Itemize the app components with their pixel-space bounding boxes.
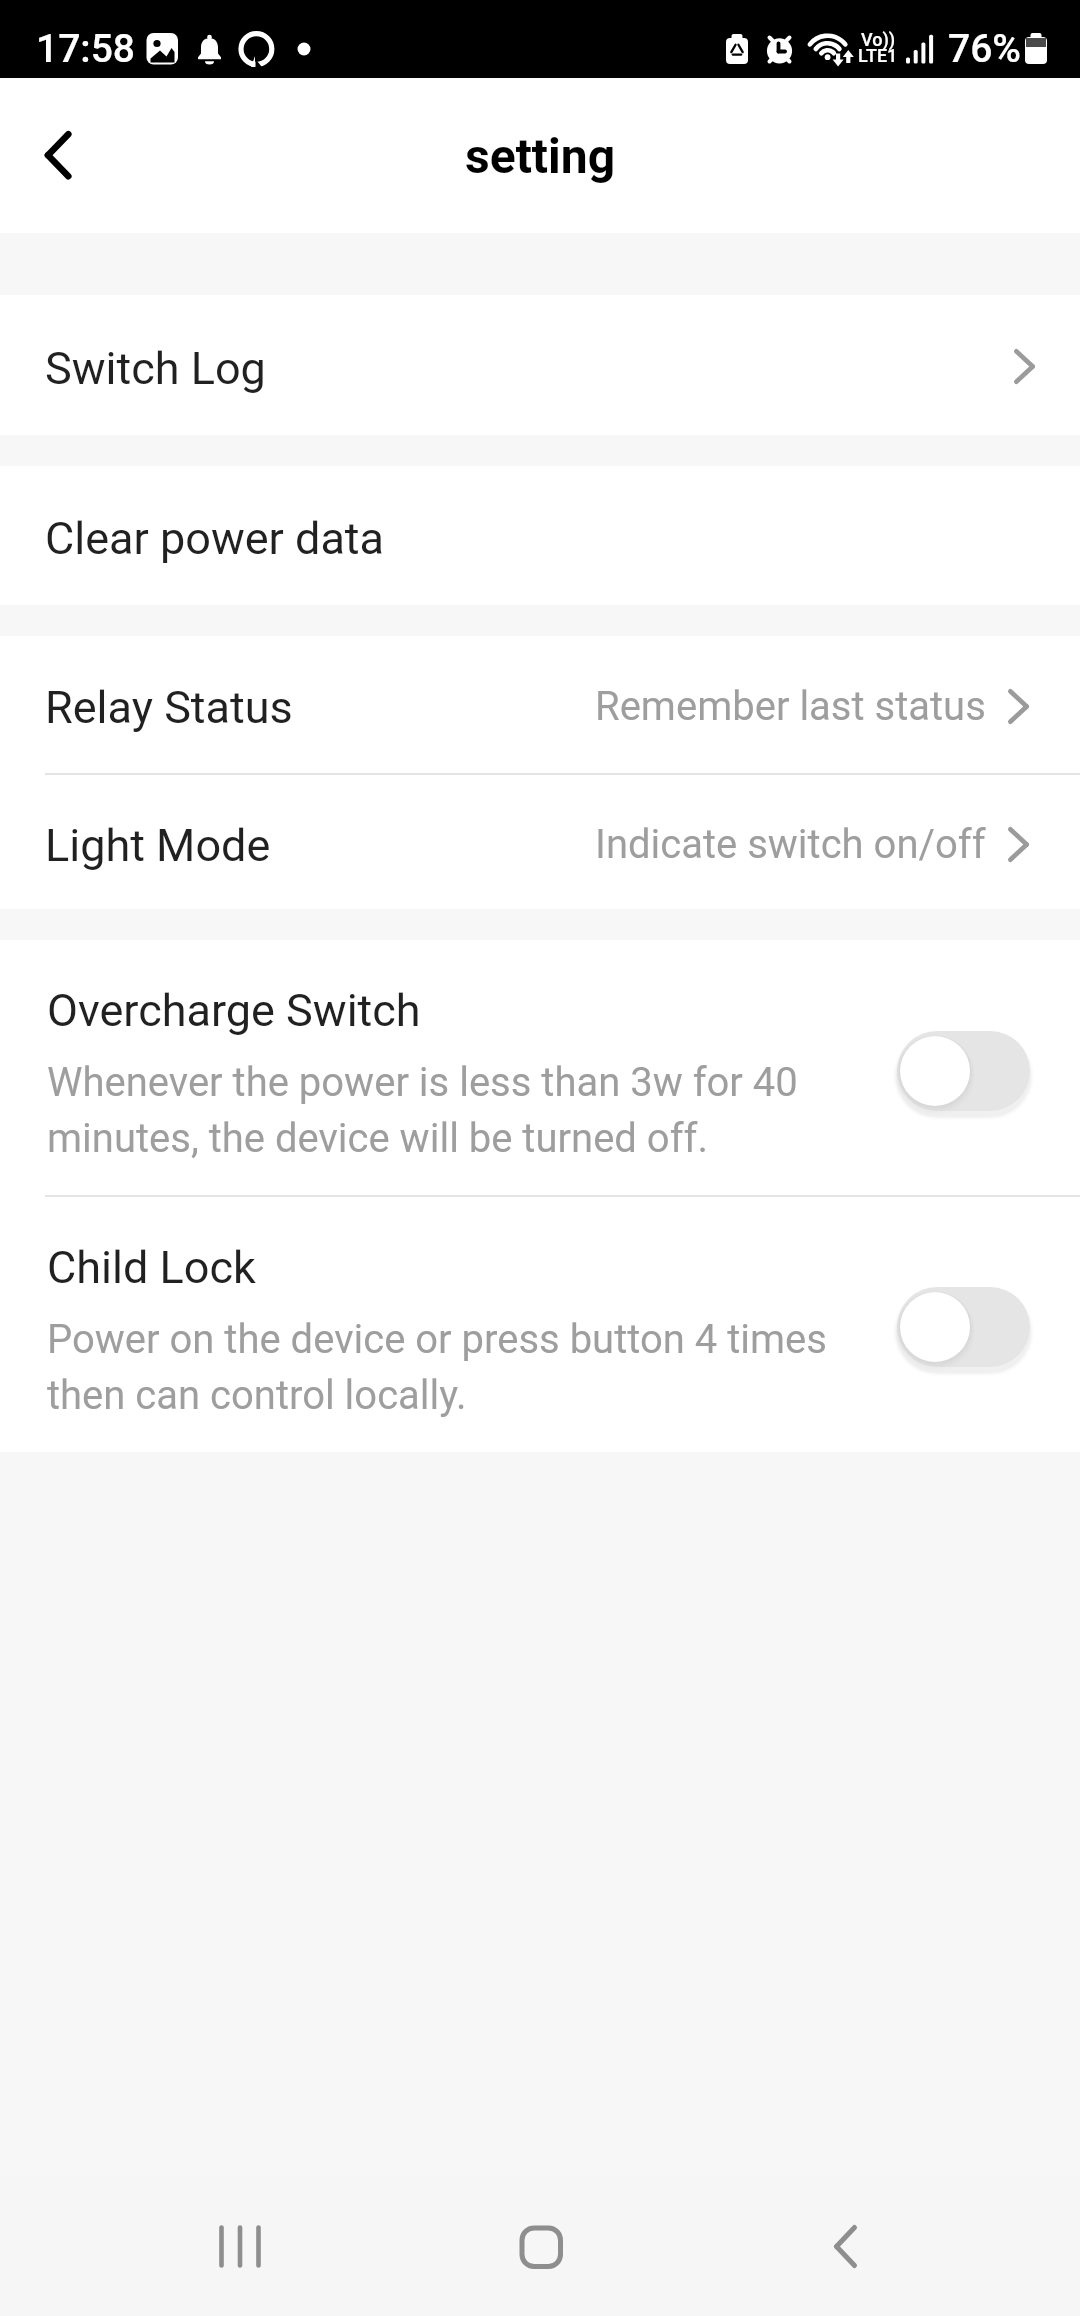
button[interactable]: Home bbox=[481, 2190, 601, 2310]
button[interactable]: Back bbox=[0, 101, 110, 211]
button[interactable]: Light Mode bbox=[0, 775, 1080, 909]
button[interactable]: Back bbox=[786, 2190, 906, 2310]
staticText: Indicate switch on/off bbox=[595, 821, 986, 868]
button[interactable]: Switch Log bbox=[0, 295, 1080, 435]
button[interactable]: Child Lock bbox=[0, 1197, 1080, 1452]
staticText: Power on the device or press button 4 ti… bbox=[47, 1316, 827, 1418]
staticText: Relay Status bbox=[45, 681, 293, 734]
staticText: Light Mode bbox=[45, 819, 271, 872]
staticText: Remember last status bbox=[595, 683, 986, 730]
button[interactable]: Toggle bbox=[897, 1031, 1042, 1127]
staticText: LTE1 bbox=[858, 45, 898, 66]
staticText: setting bbox=[465, 128, 616, 184]
staticText: Vo)) bbox=[861, 29, 896, 50]
staticText: Overcharge Switch bbox=[47, 984, 421, 1037]
button[interactable]: Overcharge Switch bbox=[0, 940, 1080, 1195]
button[interactable]: Clear power data bbox=[0, 466, 1080, 605]
staticText: 17:58 bbox=[36, 26, 136, 72]
button[interactable]: Relay Status bbox=[0, 636, 1080, 773]
button[interactable]: Toggle bbox=[897, 1287, 1042, 1383]
staticText: Clear power data bbox=[45, 512, 385, 565]
staticText: Whenever the power is less than 3w for 4… bbox=[47, 1059, 798, 1161]
staticText: 76% bbox=[948, 26, 1021, 72]
staticText: Child Lock bbox=[47, 1241, 256, 1294]
staticText: Switch Log bbox=[45, 342, 266, 395]
button[interactable]: Recent apps bbox=[180, 2190, 300, 2310]
